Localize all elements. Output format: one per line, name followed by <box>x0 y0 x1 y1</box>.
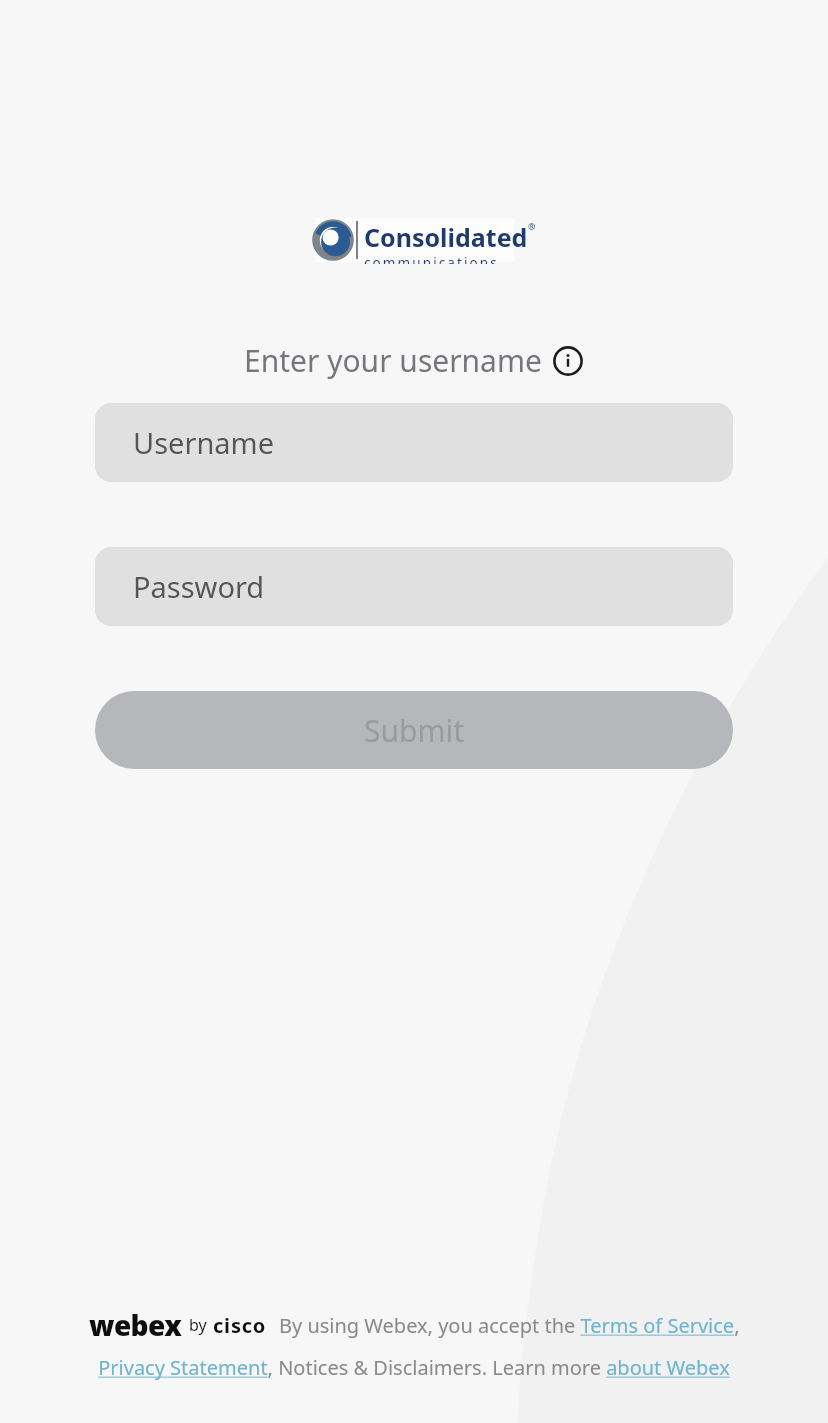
staticText: Enter your username <box>244 340 542 381</box>
staticText: Consolidated <box>364 220 528 254</box>
button[interactable]: Submit <box>95 691 733 769</box>
staticText: Submit <box>364 710 465 751</box>
button[interactable]: Information about username <box>552 345 584 377</box>
button[interactable]: Username <box>95 403 733 482</box>
staticText: communications <box>364 254 499 264</box>
staticText: Privacy Statement, Notices & Disclaimers… <box>98 1354 730 1381</box>
staticText: Username <box>133 423 275 462</box>
button[interactable]: By using Webex, you accept the Terms of … <box>279 1312 740 1339</box>
button[interactable]: Privacy Statement, Notices & Disclaimers… <box>0 1354 828 1381</box>
staticText: By using Webex, you accept the Terms of … <box>279 1312 740 1339</box>
button[interactable]: Password <box>95 547 733 626</box>
staticText: webex <box>89 1306 182 1344</box>
staticText: by <box>189 1314 207 1336</box>
staticText: ® <box>528 220 536 232</box>
staticText: Password <box>133 567 265 606</box>
staticText: cisco <box>213 1312 267 1339</box>
